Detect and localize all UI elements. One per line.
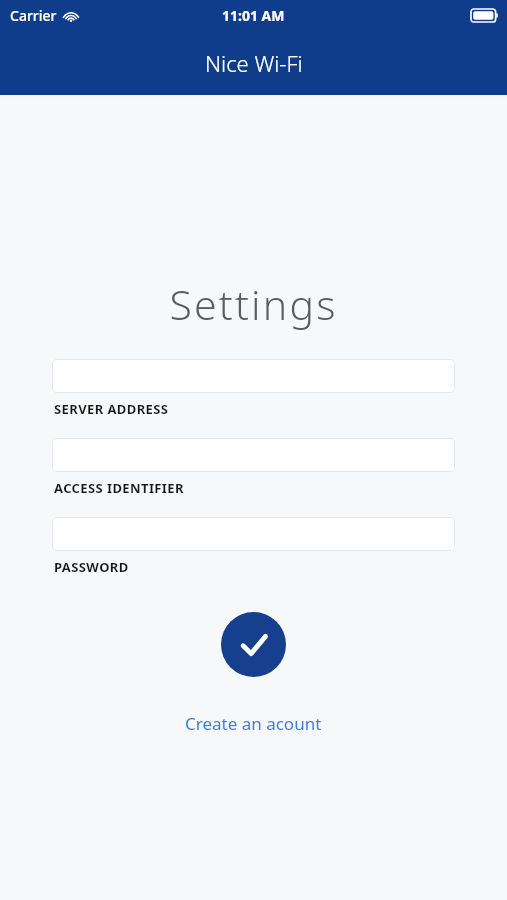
staticText: Settings (169, 276, 338, 332)
button[interactable]: SERVER ADDRESS (52, 359, 455, 418)
button[interactable]: ACCESS IDENTIFIER (52, 438, 455, 497)
staticText: Carrier (10, 6, 57, 25)
button[interactable]: PASSWORD (52, 517, 455, 576)
staticText: 11:01 AM (222, 6, 285, 25)
staticText: Create an acount (185, 712, 322, 735)
staticText: SERVER ADDRESS (54, 400, 169, 418)
button[interactable]: Confirm settings (221, 612, 286, 677)
staticText: PASSWORD (54, 558, 129, 576)
staticText: ACCESS IDENTIFIER (54, 479, 184, 497)
button[interactable]: Create an acount (175, 708, 332, 739)
staticText: Nice Wi-Fi (205, 48, 303, 78)
